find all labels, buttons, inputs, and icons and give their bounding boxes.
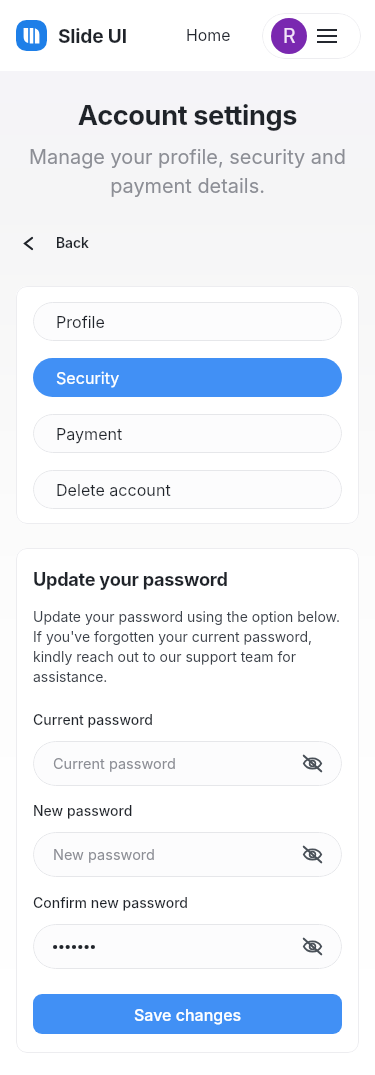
staticText: Update your password (33, 568, 228, 590)
staticText: R (283, 24, 296, 48)
staticText: Delete account (56, 480, 171, 499)
staticText: Slide UI (58, 24, 127, 47)
other: Open menu (317, 28, 337, 44)
button[interactable]: Payment (33, 414, 342, 453)
staticText: Profile (56, 312, 105, 331)
button[interactable]: Save changes (33, 994, 342, 1034)
staticText: Update your password using the option be… (33, 608, 342, 685)
staticText: Confirm new password (33, 894, 188, 911)
button[interactable]: Slide UI home (16, 20, 127, 51)
button[interactable]: Profile (33, 302, 342, 341)
staticText: Back (56, 235, 89, 252)
button[interactable]: Back (12, 228, 97, 259)
staticText: Payment (56, 424, 123, 443)
staticText: New password (53, 846, 155, 864)
staticText: Current password (53, 755, 176, 773)
button[interactable]: R (262, 13, 361, 59)
staticText: Save changes (134, 1005, 242, 1024)
staticText: Security (56, 368, 120, 387)
button[interactable]: New password (33, 832, 342, 877)
button[interactable]: Show password (303, 755, 322, 772)
button[interactable]: Delete account (33, 470, 342, 509)
staticText: New password (33, 802, 133, 819)
button[interactable]: Show password (303, 938, 322, 955)
staticText: Home (186, 26, 231, 45)
button[interactable]: Home (182, 22, 235, 49)
button[interactable]: Current password (33, 741, 342, 786)
staticText: Account settings (0, 99, 375, 132)
staticText: Manage your profile, security and paymen… (18, 145, 357, 198)
button[interactable]: Show password (33, 924, 342, 969)
staticText: Current password (33, 711, 154, 728)
button[interactable]: Security (33, 358, 342, 397)
button[interactable]: Show password (303, 846, 322, 863)
